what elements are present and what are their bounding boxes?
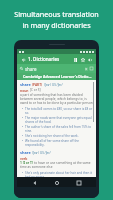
staticText: The major roads were that everyone gets … [25,116,93,124]
button[interactable]: Back [20,56,27,63]
staticText: She's only passionate about her hair and… [25,171,93,177]
staticText: She's not doing her share of the work. [25,134,79,138]
staticText: in many dictionaries [22,20,91,30]
button[interactable]: Recents [74,178,83,187]
staticText: noun [20,88,29,92]
staticText: The total bill comes to £80, so our shar… [25,107,93,115]
staticText: share [20,82,31,87]
staticText: [C or S] [30,88,41,92]
button[interactable]: Home [52,178,61,187]
button[interactable]: 1. Dictionaries [28,56,60,62]
staticText: /ʃeəʳ/ US /ʃer/ [32,151,51,155]
staticText: We found all of her some share off the r… [25,139,93,147]
staticText: share [25,66,37,72]
staticText: • [22,125,24,129]
staticText: to have or use something at the same [34,161,91,165]
button[interactable]: Pronounce [86,56,93,63]
staticText: • [22,107,24,111]
staticText: verb [20,156,28,160]
button[interactable]: Cambridge Advanced Learner's Dictio... [17,73,96,80]
staticText: Simultaneous translation [14,9,99,19]
staticText: 1 [I or T] [20,161,33,165]
staticText: Cambridge Advanced Learner's Dictio... [23,74,92,79]
staticText: • [22,134,24,138]
button[interactable]: Dictionary list [72,56,79,63]
button[interactable]: Favorites [79,56,86,63]
staticText: a part of something that has been divide… [20,93,93,105]
button[interactable]: Keyboard [90,67,93,70]
staticText: share [20,150,31,155]
button[interactable]: × [85,66,88,72]
staticText: (PART) [32,83,43,87]
staticText: The author's share of the sales fell fro… [25,125,93,133]
staticText: time as someone else [20,165,53,169]
button[interactable]: share [17,64,96,73]
staticText: • [22,171,24,175]
button[interactable]: Back [30,178,39,187]
staticText: /ʃeəʳ/ US /ʃer/ [44,83,63,87]
staticText: • [22,139,24,143]
staticText: • [22,116,24,120]
